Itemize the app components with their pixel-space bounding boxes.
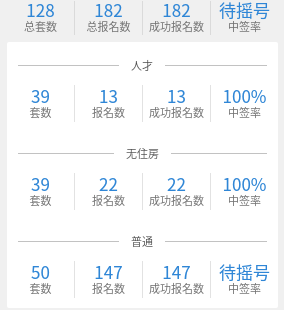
button[interactable]: 182 bbox=[143, 0, 210, 36]
button[interactable]: 待摇号 bbox=[211, 0, 278, 36]
staticText: 22 bbox=[75, 171, 142, 196]
button[interactable]: 147 bbox=[143, 259, 210, 297]
button[interactable]: 147 bbox=[75, 259, 142, 297]
button[interactable]: 待摇号 bbox=[211, 259, 278, 297]
staticText: 13 bbox=[75, 83, 142, 108]
staticText: 人才 bbox=[131, 57, 153, 73]
button[interactable]: 128 bbox=[7, 0, 74, 36]
staticText: 总套数 bbox=[7, 18, 74, 34]
staticText: 中签率 bbox=[211, 192, 278, 208]
button[interactable]: 100% bbox=[211, 83, 278, 121]
staticText: 报名数 bbox=[75, 104, 142, 120]
staticText: 待摇号 bbox=[211, 259, 278, 284]
staticText: 报名数 bbox=[75, 280, 142, 296]
button[interactable]: 13 bbox=[143, 83, 210, 121]
staticText: 中签率 bbox=[211, 104, 278, 120]
button[interactable]: 22 bbox=[75, 171, 142, 209]
button[interactable]: 182 bbox=[75, 0, 142, 36]
staticText: 100% bbox=[211, 171, 278, 196]
staticText: 100% bbox=[211, 83, 278, 108]
staticText: 中签率 bbox=[211, 18, 278, 34]
staticText: 13 bbox=[143, 83, 210, 108]
staticText: 128 bbox=[7, 0, 74, 22]
button[interactable]: 39 bbox=[7, 83, 74, 121]
staticText: 成功报名数 bbox=[143, 192, 210, 208]
staticText: 39 bbox=[7, 83, 74, 108]
button[interactable]: 13 bbox=[75, 83, 142, 121]
staticText: 无住房 bbox=[126, 145, 159, 161]
button[interactable]: 100% bbox=[211, 171, 278, 209]
button[interactable]: 39 bbox=[7, 171, 74, 209]
staticText: 182 bbox=[143, 0, 210, 22]
staticText: 普通 bbox=[131, 233, 153, 249]
staticText: 182 bbox=[75, 0, 142, 22]
staticText: 147 bbox=[143, 259, 210, 284]
staticText: 中签率 bbox=[211, 280, 278, 296]
staticText: 成功报名数 bbox=[143, 280, 210, 296]
staticText: 总报名数 bbox=[75, 18, 142, 34]
staticText: 套数 bbox=[7, 192, 74, 208]
staticText: 成功报名数 bbox=[143, 104, 210, 120]
button[interactable]: 22 bbox=[143, 171, 210, 209]
staticText: 套数 bbox=[7, 104, 74, 120]
staticText: 待摇号 bbox=[211, 0, 278, 22]
button[interactable]: 50 bbox=[7, 259, 74, 297]
staticText: 147 bbox=[75, 259, 142, 284]
staticText: 39 bbox=[7, 171, 74, 196]
staticText: 50 bbox=[7, 259, 74, 284]
staticText: 套数 bbox=[7, 280, 74, 296]
staticText: 22 bbox=[143, 171, 210, 196]
staticText: 成功报名数 bbox=[143, 18, 210, 34]
staticText: 报名数 bbox=[75, 192, 142, 208]
